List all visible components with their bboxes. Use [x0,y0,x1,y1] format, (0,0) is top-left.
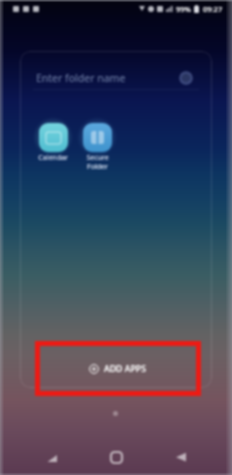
button[interactable]: Secure Folder [75,117,119,175]
staticText: Calendar [38,153,68,163]
button[interactable]: Home [96,442,136,472]
button[interactable]: Folder colour [179,71,193,85]
staticText: Enter folder name [36,71,126,85]
staticText: Secure Folder [86,153,109,171]
button[interactable]: Calendar [31,117,75,167]
staticText: 99% [176,4,191,14]
button[interactable]: Recents [32,442,72,472]
button[interactable]: Back [161,442,201,472]
staticText: ADD APPS [104,363,147,375]
button[interactable]: ADD APPS [31,350,201,388]
staticText: 09:27 [203,4,223,14]
